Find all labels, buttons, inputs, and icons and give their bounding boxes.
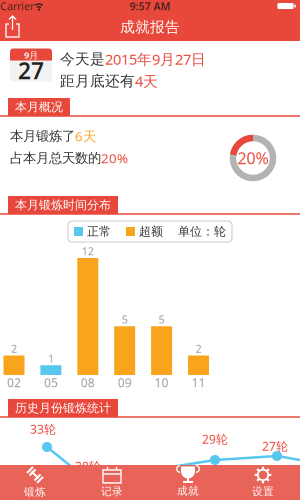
staticText: 12 xyxy=(82,244,94,258)
staticText: 成就报告 xyxy=(120,18,180,36)
staticText: 5 xyxy=(122,312,128,326)
staticText: 33轮 xyxy=(30,421,56,437)
staticText: 05 xyxy=(44,374,58,390)
staticText: 5 xyxy=(159,312,165,326)
staticText: 成就 xyxy=(177,484,199,497)
staticText: 历史月份锻炼统计 xyxy=(15,401,111,415)
staticText: 本月锻炼了 xyxy=(10,128,75,144)
button[interactable]: 设置 xyxy=(228,465,298,499)
staticText: 距月底还有 xyxy=(60,72,135,90)
staticText: 02 xyxy=(7,374,21,390)
staticText: 10 xyxy=(155,374,169,390)
staticText: 1 xyxy=(48,351,54,365)
staticText: 11 xyxy=(191,374,205,390)
staticText: 20% xyxy=(101,149,128,167)
button[interactable]: 成就 xyxy=(153,465,223,499)
staticText: 9:57 AM xyxy=(129,0,170,13)
staticText: 2 xyxy=(11,341,17,356)
staticText: 本月锻炼时间分布 xyxy=(15,198,111,212)
staticText: 4天 xyxy=(135,71,158,91)
staticText: 2015年9月27日 xyxy=(105,49,206,69)
staticText: 08 xyxy=(81,374,95,390)
staticText: 29轮 xyxy=(202,431,228,447)
staticText: 正常 xyxy=(87,224,111,239)
staticText: 28轮 xyxy=(75,458,101,474)
button[interactable]: 记录 xyxy=(77,465,147,499)
staticText: 2 xyxy=(195,341,201,356)
staticText: 今天是 xyxy=(60,50,105,68)
staticText: 锻炼 xyxy=(24,485,46,498)
button[interactable]: 锻炼 xyxy=(0,465,70,499)
staticText: Carrier xyxy=(0,0,34,13)
staticText: 设置 xyxy=(252,485,274,498)
staticText: 9月 xyxy=(24,49,38,61)
staticText: 本月概况 xyxy=(15,100,63,114)
staticText: 单位：轮 xyxy=(178,224,226,239)
staticText: 6天 xyxy=(75,127,96,145)
staticText: 超额 xyxy=(139,224,163,239)
staticText: 09 xyxy=(118,374,132,390)
staticText: 27轮 xyxy=(262,438,288,454)
button[interactable]: Share xyxy=(5,14,29,40)
staticText: 20% xyxy=(237,147,268,169)
staticText: 27 xyxy=(18,55,44,85)
staticText: 占本月总天数的 xyxy=(10,150,101,166)
staticText: 记录 xyxy=(101,485,123,498)
